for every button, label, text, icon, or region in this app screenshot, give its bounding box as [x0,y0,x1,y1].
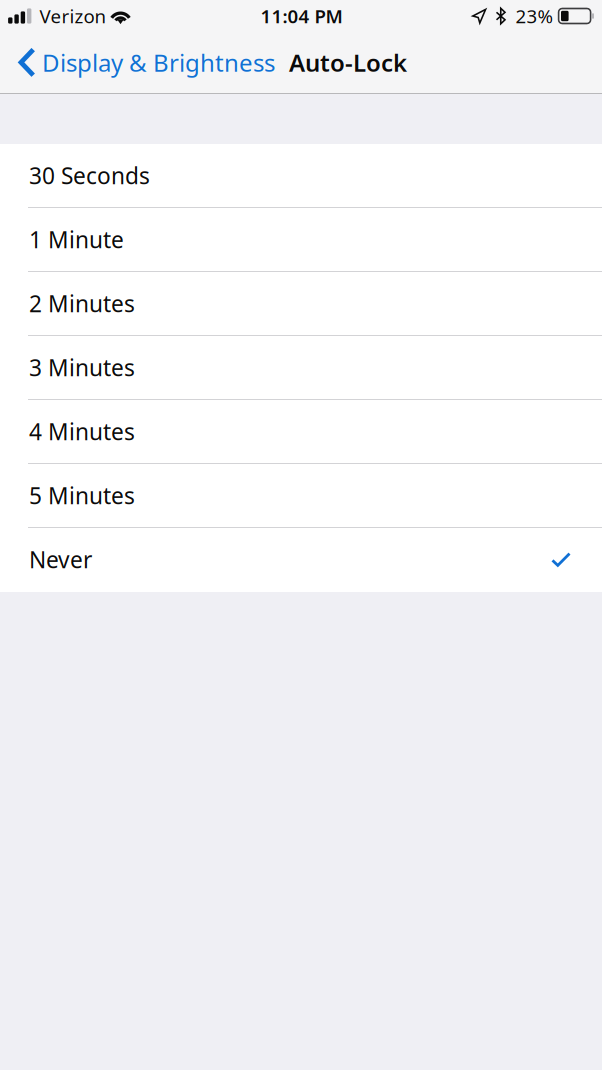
button[interactable]: Back to Display & Brightness [0,32,281,93]
staticText: Auto-Lock [289,47,407,78]
staticText: 1 Minute [29,224,124,254]
staticText: Never [29,544,92,574]
staticText: Verizon [39,4,106,28]
button[interactable]: 30 Seconds [0,144,602,208]
button[interactable]: Never [0,528,602,592]
staticText: 30 Seconds [29,160,150,190]
staticText: 5 Minutes [29,480,135,510]
staticText: 2 Minutes [29,288,135,318]
staticText: 23% [516,4,554,28]
staticText: 11:04 PM [261,4,343,28]
staticText: 3 Minutes [29,352,135,382]
button[interactable]: 1 Minute [0,208,602,272]
button[interactable]: 4 Minutes [0,400,602,464]
button[interactable]: 2 Minutes [0,272,602,336]
staticText: Display & Brightness [42,47,275,78]
staticText: 4 Minutes [29,416,135,446]
button[interactable]: 3 Minutes [0,336,602,400]
button[interactable]: 5 Minutes [0,464,602,528]
